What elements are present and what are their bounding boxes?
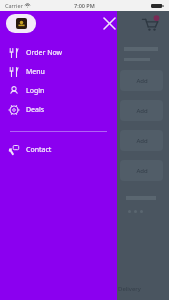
button[interactable]: Login — [0, 81, 117, 100]
staticText: Add — [136, 77, 148, 85]
button[interactable]: Cart — [141, 15, 159, 33]
button[interactable]: Order Now — [0, 43, 117, 62]
staticText: Add — [136, 137, 148, 145]
staticText: Login — [26, 86, 45, 96]
staticText: 7:00 PM — [74, 2, 95, 9]
staticText: Carrier — [5, 2, 23, 9]
staticText: Deals — [26, 105, 45, 115]
staticText: Delivery — [118, 285, 141, 293]
staticText: Menu — [26, 67, 45, 77]
button[interactable]: Deals — [0, 100, 117, 119]
staticText: Add — [136, 167, 148, 175]
staticText: Contact — [26, 145, 52, 155]
button[interactable]: Contact — [0, 140, 117, 159]
button[interactable]: Close menu — [100, 14, 118, 32]
button[interactable]: Menu — [0, 62, 117, 81]
staticText: Add — [136, 107, 148, 115]
staticText: Order Now — [26, 48, 63, 58]
button[interactable] — [6, 14, 36, 33]
